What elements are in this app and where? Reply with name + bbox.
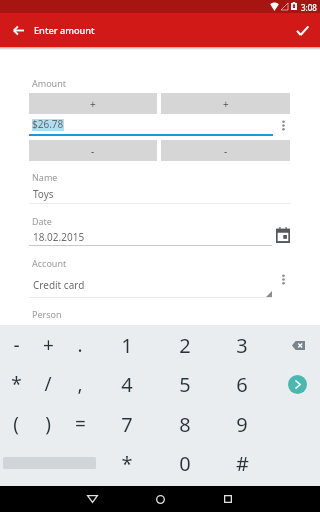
staticText: * bbox=[121, 450, 133, 477]
staticText: Name bbox=[32, 171, 58, 183]
button[interactable]: Next bbox=[288, 375, 307, 394]
staticText: - bbox=[224, 144, 228, 158]
button[interactable]: Recents bbox=[215, 486, 241, 512]
staticText: 9 bbox=[236, 411, 248, 438]
staticText: * bbox=[11, 371, 22, 397]
button[interactable]: 5 bbox=[169, 368, 201, 400]
button[interactable]: 1 bbox=[111, 329, 143, 361]
button[interactable]: + bbox=[29, 93, 157, 114]
staticText: - bbox=[91, 144, 95, 158]
staticText: # bbox=[236, 450, 249, 477]
button[interactable]: - bbox=[161, 140, 290, 161]
staticText: / bbox=[44, 371, 52, 397]
button[interactable]: 6 bbox=[226, 368, 258, 400]
button[interactable]: 8 bbox=[169, 408, 201, 440]
staticText: + bbox=[223, 97, 229, 111]
staticText: $26.78 bbox=[32, 117, 64, 131]
staticText: Credit card bbox=[33, 278, 85, 292]
staticText: Amount bbox=[32, 77, 66, 89]
button[interactable]: - bbox=[29, 140, 157, 161]
staticText: . bbox=[77, 332, 83, 358]
staticText: 18.02.2015 bbox=[33, 230, 85, 244]
button[interactable]: / bbox=[32, 368, 64, 400]
button[interactable]: * bbox=[0, 368, 32, 400]
staticText: 7 bbox=[121, 411, 133, 438]
button[interactable]: , bbox=[64, 368, 96, 400]
button[interactable]: 3 bbox=[226, 329, 258, 361]
button[interactable]: More options bbox=[276, 116, 290, 134]
button[interactable]: ) bbox=[32, 408, 64, 440]
staticText: + bbox=[90, 97, 96, 111]
button[interactable]: Confirm bbox=[288, 16, 316, 44]
button[interactable]: Pick date bbox=[276, 227, 290, 243]
button[interactable]: + bbox=[161, 93, 290, 114]
staticText: 2 bbox=[179, 332, 191, 359]
button[interactable]: - bbox=[0, 329, 32, 361]
staticText: = bbox=[75, 411, 86, 437]
staticText: 3 bbox=[236, 332, 248, 359]
button[interactable]: Backspace bbox=[286, 335, 310, 355]
button[interactable]: * bbox=[111, 447, 143, 479]
button[interactable]: 9 bbox=[226, 408, 258, 440]
button[interactable]: ( bbox=[0, 408, 32, 440]
staticText: Enter amount bbox=[34, 24, 95, 37]
staticText: Account bbox=[32, 257, 67, 269]
staticText: Person bbox=[32, 308, 62, 320]
staticText: ( bbox=[13, 411, 19, 437]
staticText: - bbox=[13, 332, 20, 358]
staticText: 6 bbox=[236, 371, 248, 398]
staticText: 8 bbox=[179, 411, 191, 438]
button[interactable]: 2 bbox=[169, 329, 201, 361]
staticText: + bbox=[43, 332, 54, 358]
button[interactable]: Back bbox=[79, 486, 105, 512]
staticText: 4 bbox=[121, 371, 133, 398]
button[interactable]: 7 bbox=[111, 408, 143, 440]
button[interactable]: # bbox=[226, 447, 258, 479]
button[interactable]: = bbox=[64, 408, 96, 440]
staticText: 0 bbox=[179, 450, 191, 477]
staticText: ) bbox=[45, 411, 51, 437]
button[interactable]: More options bbox=[276, 270, 290, 288]
staticText: 3:08 bbox=[301, 2, 317, 13]
button[interactable]: 0 bbox=[169, 447, 201, 479]
staticText: 1 bbox=[121, 332, 133, 359]
staticText: 5 bbox=[179, 371, 191, 398]
button[interactable]: Back bbox=[4, 16, 32, 44]
button[interactable]: + bbox=[32, 329, 64, 361]
button[interactable]: . bbox=[64, 329, 96, 361]
button[interactable]: Home bbox=[147, 486, 173, 512]
button[interactable]: 4 bbox=[111, 368, 143, 400]
staticText: Date bbox=[32, 215, 52, 227]
staticText: , bbox=[77, 371, 83, 397]
staticText: Toys bbox=[33, 187, 54, 201]
